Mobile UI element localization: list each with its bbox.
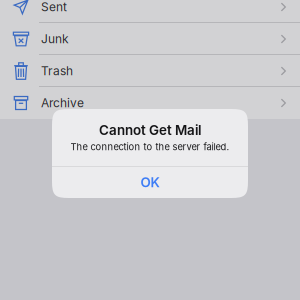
staticText: Archive	[41, 96, 84, 110]
staticText: Sent	[41, 0, 67, 14]
button[interactable]: Archive	[0, 87, 300, 119]
staticText: Junk	[41, 32, 69, 46]
button[interactable]: Sent	[0, 0, 300, 23]
staticText: Cannot Get Mail	[99, 122, 201, 138]
staticText: The connection to the server failed.	[70, 141, 229, 152]
button[interactable]: Trash	[0, 55, 300, 87]
staticText: OK	[140, 174, 159, 190]
staticText: Trash	[41, 64, 73, 78]
button[interactable]: OK	[52, 167, 248, 198]
button[interactable]: Junk	[0, 23, 300, 55]
